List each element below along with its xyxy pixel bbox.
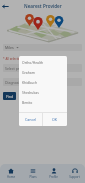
staticText: Cancel bbox=[25, 117, 37, 122]
staticText: Find bbox=[6, 94, 14, 99]
button[interactable]: Cancel bbox=[19, 113, 42, 126]
staticText: Ortho/Health bbox=[22, 60, 44, 65]
staticText: Support bbox=[69, 175, 80, 179]
button[interactable]: Diagnosis bbox=[3, 78, 82, 86]
button[interactable]: Ortho/Health bbox=[19, 57, 67, 67]
button[interactable]: Profile bbox=[43, 164, 64, 183]
button[interactable]: Back bbox=[1, 2, 10, 11]
button[interactable]: OK bbox=[43, 113, 67, 126]
staticText: Nearest Provider bbox=[24, 3, 62, 9]
button[interactable]: Home bbox=[0, 164, 22, 183]
staticText: OK bbox=[52, 117, 58, 122]
staticText: Profile bbox=[49, 175, 58, 179]
button[interactable]: Support bbox=[64, 164, 85, 183]
button[interactable]: Plans bbox=[22, 164, 43, 183]
staticText: * All selections required bbox=[3, 57, 37, 61]
button[interactable]: Shedrukas bbox=[19, 87, 67, 97]
button[interactable]: Miles bbox=[3, 44, 82, 51]
staticText: Benito bbox=[22, 100, 33, 105]
staticText: Khidbuch bbox=[22, 80, 38, 85]
staticText: Graham bbox=[22, 70, 35, 75]
staticText: Shedrukas bbox=[22, 90, 39, 95]
staticText: Home bbox=[7, 175, 15, 179]
staticText: Select provider type bbox=[5, 66, 38, 71]
staticText: Miles bbox=[5, 45, 14, 50]
button[interactable]: Benito bbox=[19, 97, 67, 107]
staticText: Plans bbox=[29, 175, 37, 179]
button[interactable]: Find bbox=[3, 92, 16, 100]
button[interactable]: Graham bbox=[19, 67, 67, 77]
button[interactable]: Select provider type bbox=[3, 64, 82, 72]
staticText: Diagnosis bbox=[5, 80, 22, 85]
button[interactable]: Khidbuch bbox=[19, 77, 67, 87]
